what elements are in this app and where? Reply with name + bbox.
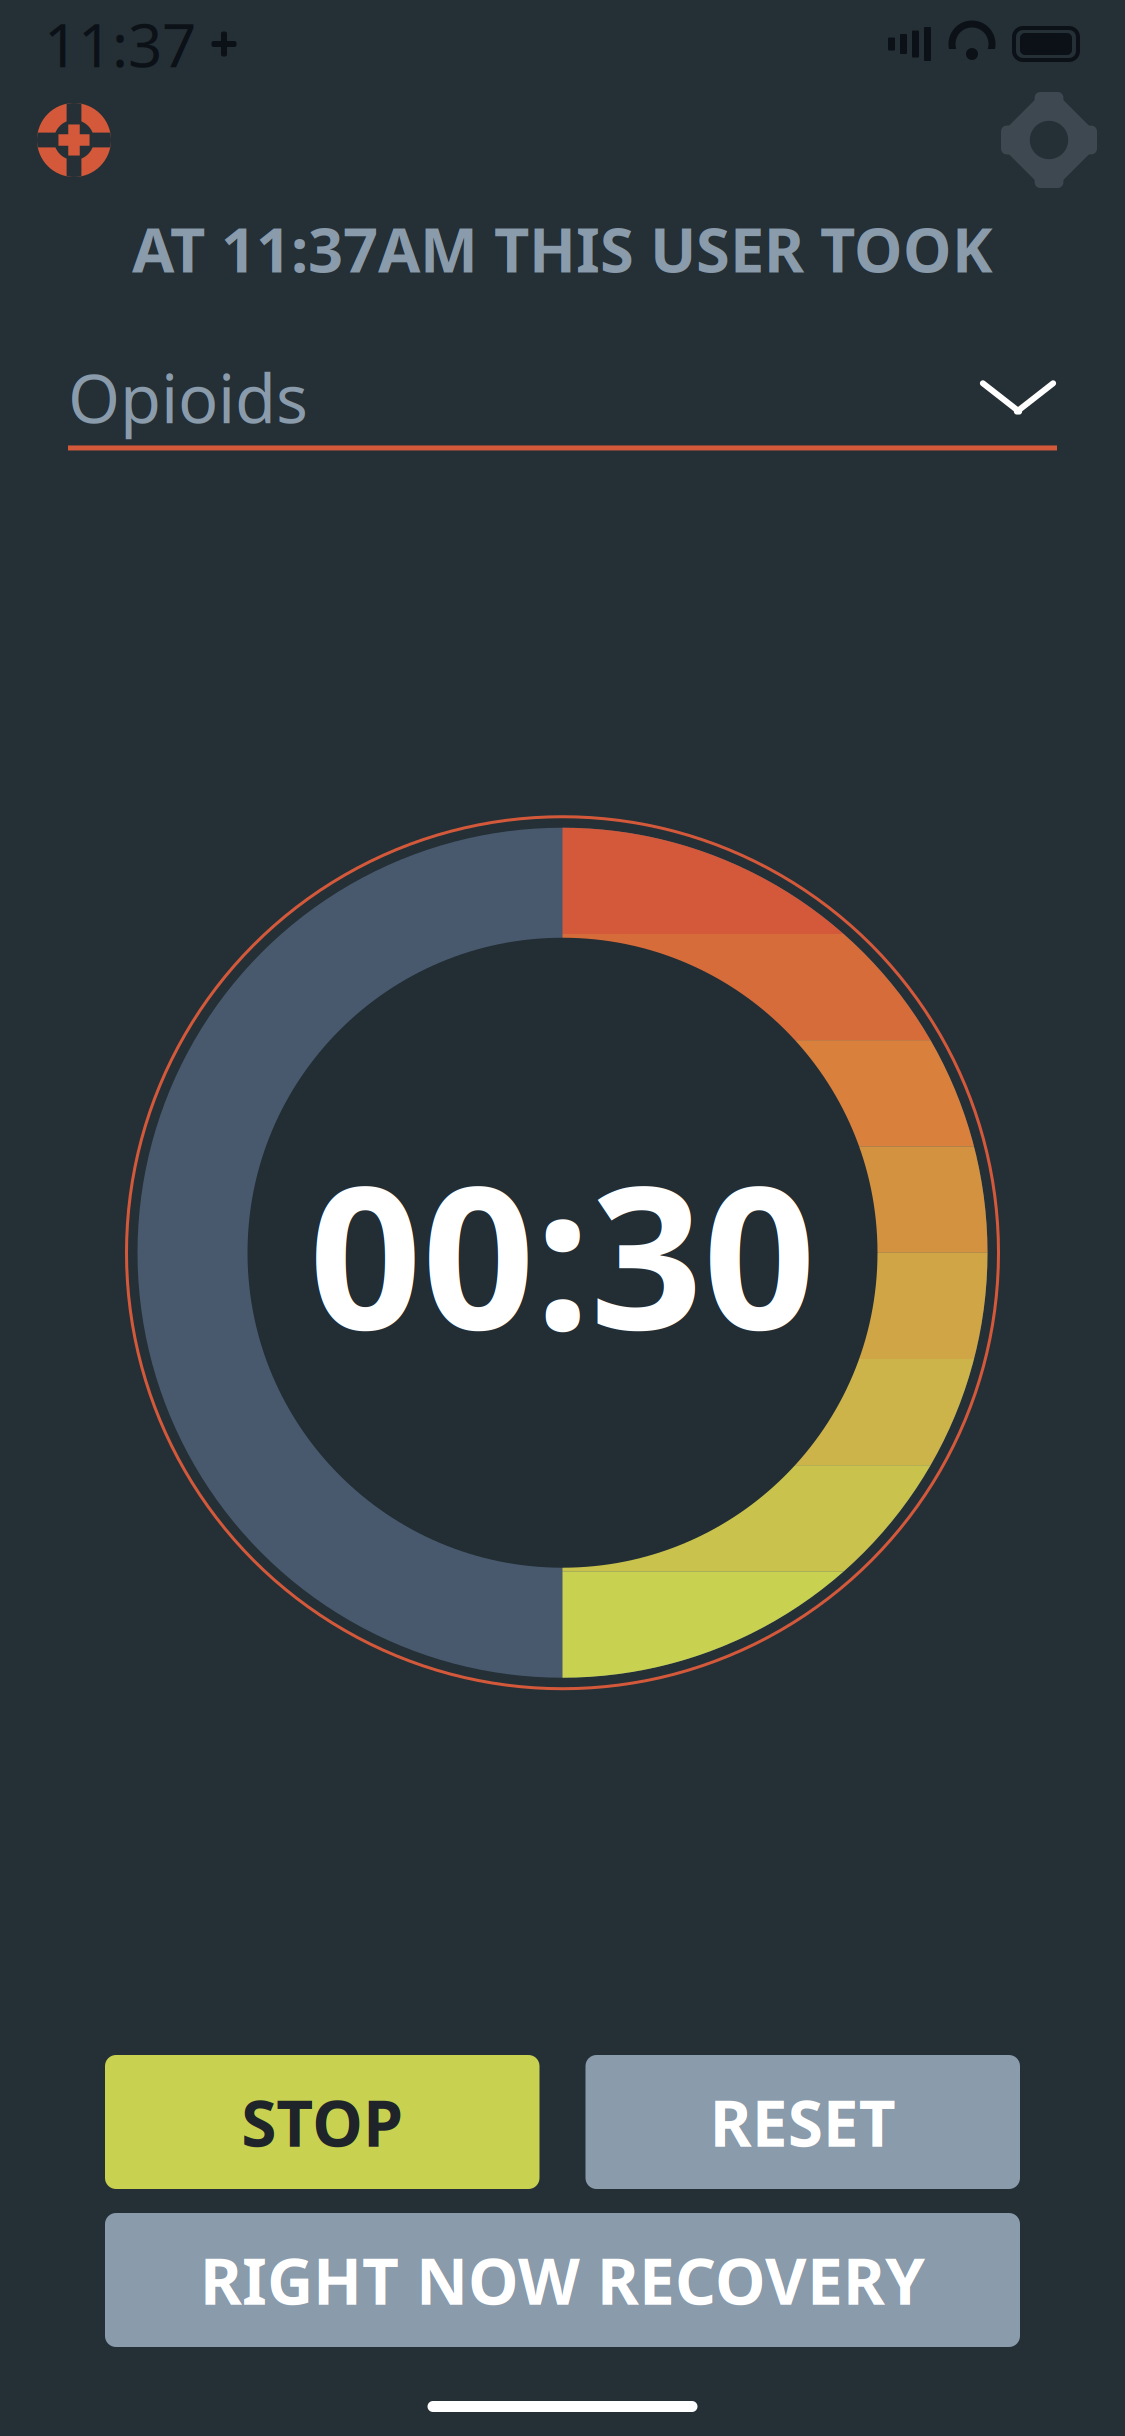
button[interactable]: Rescue (26, 92, 122, 188)
staticText: AT 11:37AM THIS USER TOOK (132, 208, 993, 289)
button[interactable]: RESET (585, 2055, 1020, 2189)
staticText: STOP (241, 2079, 403, 2164)
button[interactable]: RIGHT NOW RECOVERY (105, 2213, 1020, 2347)
button[interactable]: Settings (999, 90, 1099, 190)
staticText: Opioids (68, 353, 308, 442)
button[interactable]: STOP (105, 2055, 539, 2189)
staticText: RESET (710, 2079, 896, 2164)
staticText: RIGHT NOW RECOVERY (200, 2237, 925, 2322)
staticText: 11:37 (44, 4, 196, 84)
button[interactable]: Opioids (68, 349, 1057, 450)
staticText: 00:30 (309, 1122, 816, 1384)
